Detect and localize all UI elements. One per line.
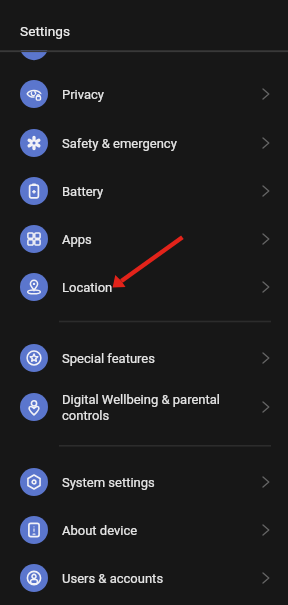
staticText: Users & accounts bbox=[62, 571, 248, 586]
button[interactable]: Special features bbox=[0, 334, 288, 382]
staticText: Special features bbox=[62, 351, 248, 366]
button[interactable]: Safety & emergency bbox=[0, 119, 288, 167]
button[interactable]: System settings bbox=[0, 458, 288, 506]
staticText: Settings bbox=[20, 23, 70, 39]
button[interactable]: Location bbox=[0, 263, 288, 311]
staticText: About device bbox=[62, 523, 248, 538]
button[interactable]: About device bbox=[0, 506, 288, 554]
staticText: Safety & emergency bbox=[62, 136, 248, 151]
staticText: Battery bbox=[62, 184, 248, 199]
staticText: Privacy bbox=[62, 87, 248, 102]
button[interactable]: Digital Wellbeing & parental controls bbox=[0, 383, 288, 431]
staticText: Location bbox=[62, 280, 248, 295]
button[interactable]: Users & accounts bbox=[0, 554, 288, 602]
staticText: Apps bbox=[62, 232, 248, 247]
button[interactable]: Apps bbox=[0, 215, 288, 263]
staticText: Digital Wellbeing & parental controls bbox=[62, 392, 248, 423]
button[interactable]: Privacy bbox=[0, 70, 288, 118]
staticText: System settings bbox=[62, 475, 248, 490]
button[interactable]: Battery bbox=[0, 167, 288, 215]
